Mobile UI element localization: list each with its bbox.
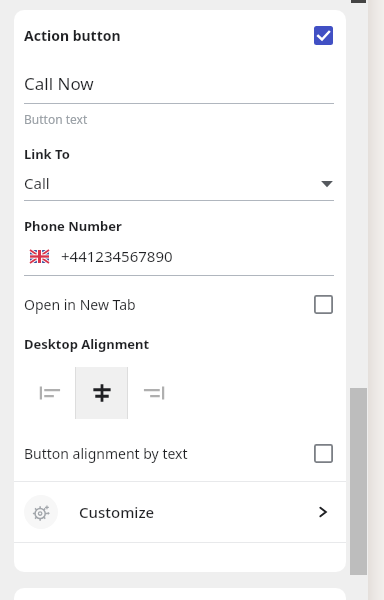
button[interactable]: Button alignment by text, unchecked	[313, 443, 334, 464]
button[interactable]: Action button, checked	[313, 25, 334, 46]
staticText: Open in New Tab	[24, 295, 136, 314]
button[interactable]: Open in New Tab, unchecked	[313, 294, 334, 315]
button[interactable]: Call Now	[14, 60, 346, 127]
staticText: Call	[24, 173, 50, 193]
staticText: Customize	[79, 502, 155, 522]
staticText: Desktop Alignment	[24, 335, 150, 353]
button[interactable]: Link To	[14, 145, 346, 201]
staticText: Button text	[24, 111, 88, 127]
button[interactable]: Align center	[76, 367, 127, 419]
staticText: Phone Number	[24, 217, 122, 235]
button[interactable]: Align right	[128, 367, 179, 419]
button[interactable]: Open Customize	[312, 501, 334, 523]
button[interactable]: Align left	[24, 367, 75, 419]
staticText: Link To	[24, 145, 70, 163]
button[interactable]: Button alignment by text	[14, 431, 346, 475]
button[interactable]: Customize	[14, 482, 346, 542]
staticText: Button alignment by text	[24, 444, 188, 463]
button[interactable]: Action button	[14, 10, 346, 60]
staticText: Action button	[24, 26, 121, 45]
button[interactable]: Phone Number	[14, 217, 346, 276]
button[interactable]: Open in New Tab	[14, 282, 346, 326]
staticText: Call Now	[24, 72, 94, 95]
staticText: +441234567890	[61, 246, 173, 266]
